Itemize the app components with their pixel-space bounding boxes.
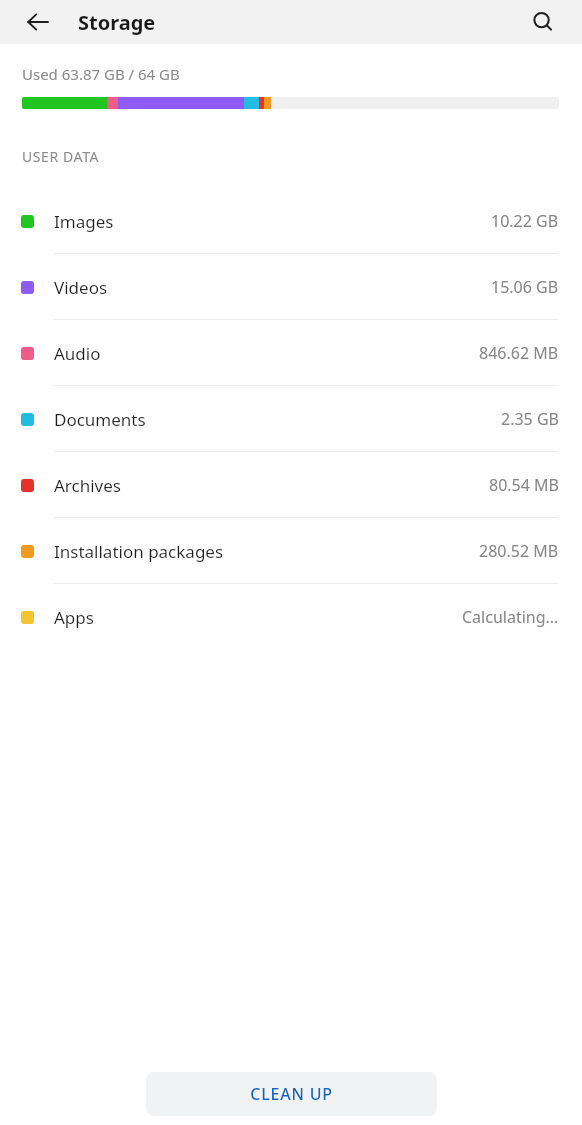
staticText: Images [54,210,114,233]
staticText: Videos [54,276,108,299]
button[interactable]: Back [16,0,60,44]
button[interactable]: Images [0,188,582,254]
staticText: Documents [54,408,146,431]
button[interactable]: Documents [0,386,582,452]
staticText: CLEAN UP [250,1083,333,1105]
button[interactable]: Audio [0,320,582,386]
staticText: 846.62 MB [479,342,559,364]
staticText: 10.22 GB [491,210,559,232]
staticText: Audio [54,342,101,365]
button[interactable]: Installation packages [0,518,582,584]
staticText: Archives [54,474,121,497]
staticText: 80.54 MB [489,474,559,496]
staticText: 280.52 MB [479,540,559,562]
button[interactable]: Videos [0,254,582,320]
staticText: Calculating... [462,606,559,628]
button[interactable]: Apps [0,584,582,650]
staticText: Used 63.87 GB / 64 GB [22,64,180,84]
button[interactable]: CLEAN UP [146,1072,437,1116]
staticText: Installation packages [54,540,224,563]
staticText: 15.06 GB [491,276,559,298]
staticText: Apps [54,606,94,629]
button[interactable]: Archives [0,452,582,518]
staticText: 2.35 GB [501,408,559,430]
button[interactable]: Search [521,0,565,44]
staticText: Storage [78,9,156,36]
staticText: USER DATA [22,147,100,166]
